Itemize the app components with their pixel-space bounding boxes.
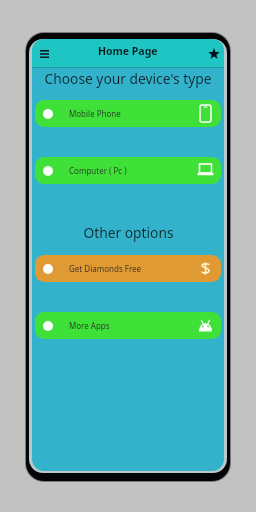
staticText: Choose your device's type (44, 69, 212, 88)
button[interactable]: Mobile Phone (35, 100, 221, 127)
button[interactable]: Menu (32, 42, 56, 66)
button[interactable]: Computer ( Pc ) (35, 157, 221, 184)
staticText: More Apps (69, 320, 110, 331)
staticText: Computer ( Pc ) (69, 165, 127, 176)
staticText: Home Page (98, 44, 158, 58)
staticText: Mobile Phone (69, 108, 121, 119)
button[interactable]: Favorite (200, 42, 224, 66)
button[interactable]: More Apps (35, 312, 221, 339)
staticText: Get Diamonds Free (69, 263, 142, 274)
staticText: Other options (83, 223, 174, 242)
button[interactable]: Get Diamonds Free (35, 255, 221, 282)
